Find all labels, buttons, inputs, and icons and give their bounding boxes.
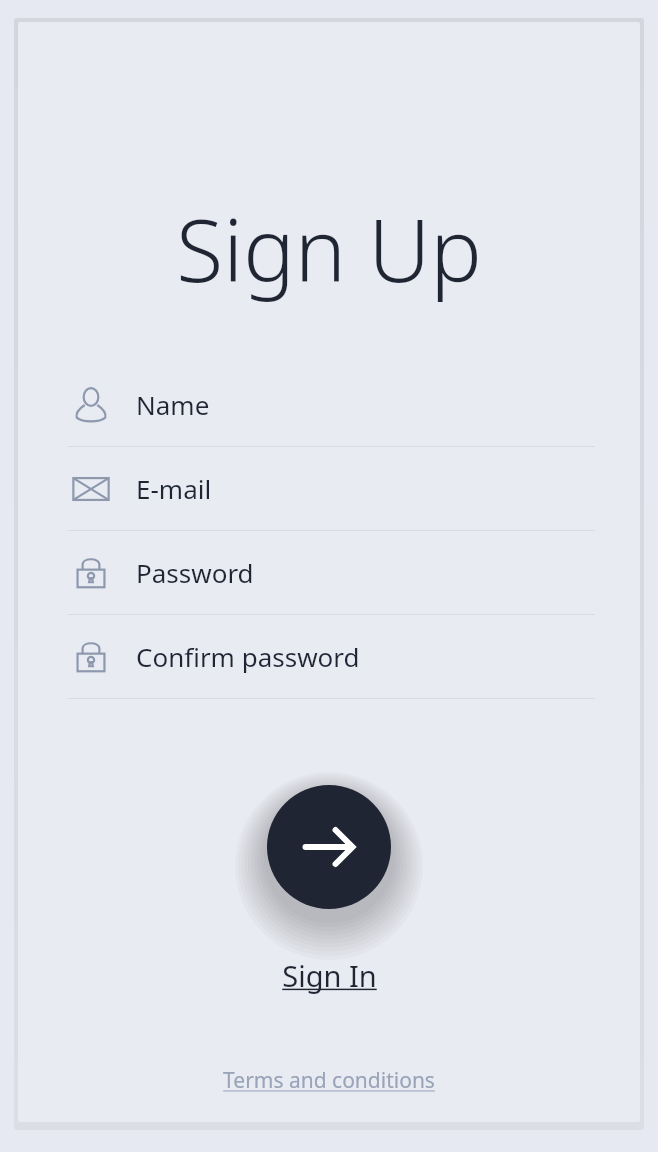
button[interactable]: Sign In: [272, 950, 387, 1001]
button[interactable]: Submit sign up: [267, 785, 391, 909]
staticText: E-mail: [136, 471, 212, 506]
button[interactable]: Terms and conditions: [213, 1060, 445, 1101]
staticText: Password: [136, 555, 254, 590]
staticText: Sign In: [282, 956, 377, 995]
button[interactable]: Confirm password: [68, 615, 595, 698]
staticText: Confirm password: [136, 639, 360, 674]
button[interactable]: Password: [68, 531, 595, 614]
staticText: Name: [136, 387, 210, 422]
staticText: Terms and conditions: [223, 1066, 435, 1095]
button[interactable]: E-mail: [68, 447, 595, 530]
staticText: Sign Up: [176, 190, 482, 307]
button[interactable]: Name: [68, 363, 595, 446]
